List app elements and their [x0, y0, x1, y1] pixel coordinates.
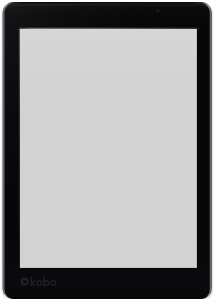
- button[interactable]: Kobo e-reader: [0, 0, 214, 299]
